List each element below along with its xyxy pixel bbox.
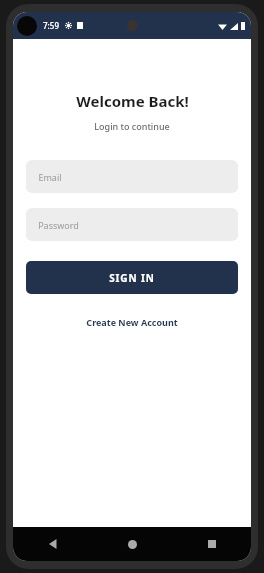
staticText: Welcome Back! xyxy=(76,91,189,111)
staticText: 7:59 xyxy=(43,20,59,31)
button[interactable]: Password xyxy=(26,208,238,241)
button[interactable]: SIGN IN xyxy=(26,261,238,294)
button[interactable]: Back xyxy=(13,527,93,561)
staticText: Login to continue xyxy=(94,120,170,132)
button[interactable]: Email xyxy=(26,160,238,193)
staticText: Password xyxy=(38,219,79,231)
button[interactable]: Create New Account xyxy=(78,312,186,332)
button[interactable]: Recents xyxy=(172,527,251,561)
staticText: Create New Account xyxy=(86,316,178,328)
button[interactable]: Home xyxy=(93,527,172,561)
staticText: Email xyxy=(38,171,62,183)
staticText: SIGN IN xyxy=(109,271,155,285)
